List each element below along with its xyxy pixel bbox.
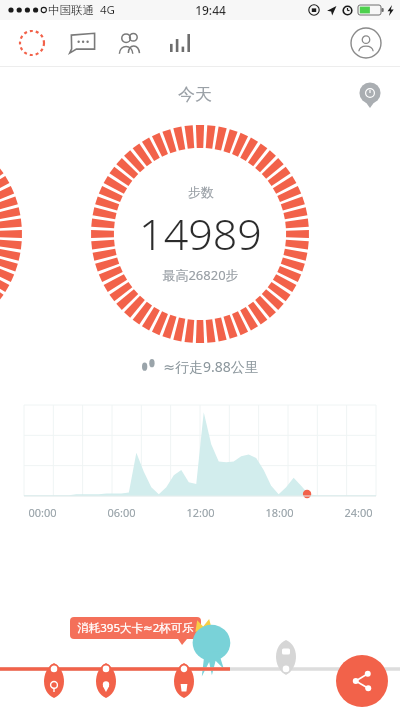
staticText: 消耗395大卡≈2杯可乐 (77, 620, 194, 636)
staticText: 06:00 (107, 505, 136, 520)
button[interactable]: Profile (346, 23, 386, 63)
button[interactable]: Share (336, 655, 388, 707)
staticText: ≈行走9.88公里 (163, 357, 259, 376)
staticText: 中国联通 (48, 3, 94, 17)
button[interactable]: Location (352, 77, 388, 113)
button[interactable]: ≈行走9.88公里 (142, 357, 259, 376)
button[interactable]: 步数 (91, 125, 309, 343)
button[interactable]: Statistics (160, 23, 200, 63)
staticText: 今天 (178, 84, 212, 105)
button[interactable]: 今天 (178, 84, 212, 105)
staticText: 18:00 (265, 505, 294, 520)
staticText: 24:00 (344, 505, 373, 520)
staticText: 00:00 (28, 505, 57, 520)
button[interactable]: Friends (110, 23, 150, 63)
staticText: 14989 (139, 204, 262, 263)
button[interactable]: Activity ring (14, 25, 50, 61)
staticText: 19:44 (195, 2, 226, 18)
staticText: 4G (100, 2, 115, 18)
staticText: 12:00 (186, 505, 215, 520)
button[interactable] (0, 657, 400, 711)
button[interactable] (0, 657, 400, 711)
button[interactable]: 消耗395大卡≈2杯可乐 (70, 617, 201, 645)
button[interactable]: Messages (62, 23, 102, 63)
staticText: 步数 (188, 184, 214, 200)
button[interactable] (0, 657, 400, 711)
button[interactable] (0, 657, 400, 711)
staticText: 最高26820步 (162, 266, 239, 284)
button[interactable]: 00:00 (0, 397, 400, 522)
